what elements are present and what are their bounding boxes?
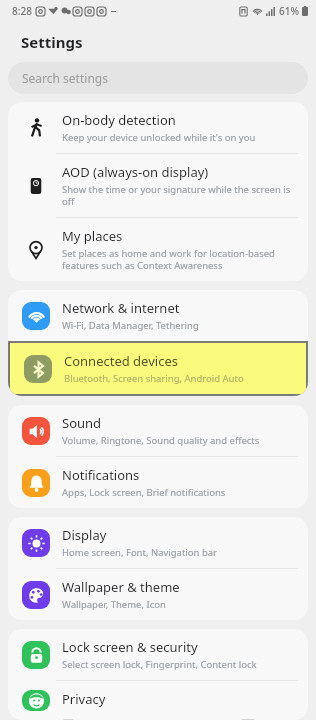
button[interactable]: Privacy — [8, 681, 308, 720]
staticText: 8:28 — [12, 4, 32, 18]
button[interactable]: Sound — [8, 405, 308, 456]
staticText: Volume, Ringtone, Sound quality and effe… — [62, 434, 260, 447]
staticText: Keep your device unlocked while it's on … — [62, 131, 256, 144]
staticText: Privacy — [62, 690, 106, 708]
staticText: Show the time or your signature while th… — [62, 183, 296, 208]
button[interactable]: Network & internet — [8, 290, 308, 341]
staticText: Network & internet — [62, 299, 180, 317]
button[interactable]: Lock screen & security — [8, 629, 308, 680]
staticText: 61% — [279, 4, 299, 18]
staticText: Set places as home and work for location… — [62, 247, 296, 272]
button[interactable]: Wallpaper & theme — [8, 569, 308, 620]
staticText: Wallpaper, Theme, Icon — [62, 598, 166, 611]
button[interactable]: On-body detection — [8, 102, 308, 153]
button[interactable]: Search settings — [8, 62, 308, 94]
button[interactable]: AOD (always-on display) — [8, 154, 308, 217]
staticText: Notifications — [62, 466, 140, 484]
staticText: Connected devices — [64, 352, 178, 370]
staticText: My places — [62, 227, 123, 245]
staticText: Search settings — [22, 70, 108, 86]
staticText: Select screen lock, Fingerprint, Content… — [62, 658, 257, 671]
staticText: On-body detection — [62, 111, 176, 129]
staticText: Settings — [21, 32, 83, 52]
staticText: Display — [62, 526, 107, 544]
staticText: Wi-Fi, Data Manager, Tethering — [62, 319, 199, 332]
button[interactable]: Display — [8, 517, 308, 568]
staticText: Sound — [62, 414, 102, 432]
staticText: Bluetooth, Screen sharing, Android Auto — [64, 372, 244, 385]
button[interactable]: Connected devices — [10, 343, 306, 394]
staticText: Apps, Lock screen, Brief notifications — [62, 486, 226, 499]
button[interactable]: My places — [8, 218, 308, 281]
button[interactable]: Notifications — [8, 457, 308, 508]
staticText: Home screen, Font, Navigation bar — [62, 546, 218, 559]
staticText: AOD (always-on display) — [62, 163, 209, 181]
staticText: Lock screen & security — [62, 638, 198, 656]
staticText: Wallpaper & theme — [62, 578, 180, 596]
